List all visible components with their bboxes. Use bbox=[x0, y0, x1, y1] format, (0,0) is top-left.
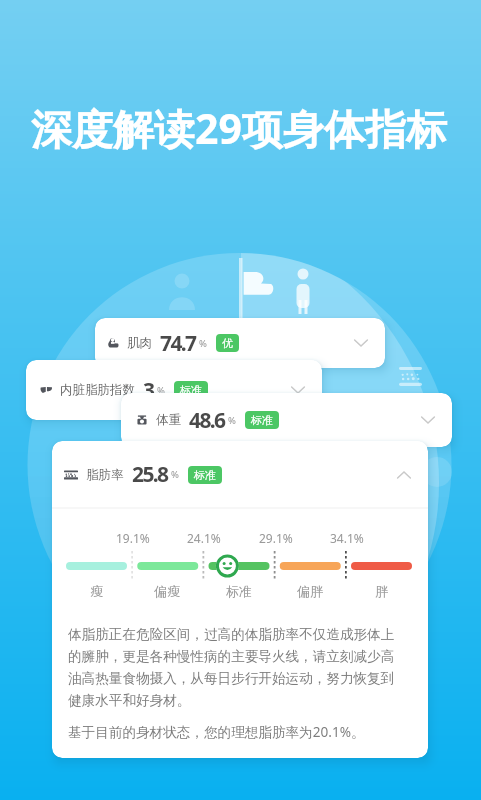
staticText: 48.6 bbox=[189, 406, 225, 435]
staticText: 标准 bbox=[180, 383, 202, 397]
staticText: 体重 bbox=[156, 412, 181, 428]
staticText: 25.8 bbox=[132, 460, 168, 489]
button[interactable]: 内脏脂肪指数 bbox=[26, 360, 322, 420]
staticText: 脂肪率 bbox=[86, 467, 124, 483]
staticText: 3 bbox=[143, 376, 154, 405]
staticText: 胖 bbox=[375, 583, 388, 599]
button[interactable]: 脂肪率 bbox=[52, 441, 428, 508]
staticText: % bbox=[171, 468, 179, 481]
staticText: 内脏脂肪指数 bbox=[60, 382, 135, 398]
button[interactable]: Collapse bbox=[395, 466, 413, 484]
button[interactable]: Expand bbox=[419, 411, 437, 429]
staticText: 偏胖 bbox=[297, 583, 323, 599]
staticText: 肌肉 bbox=[127, 335, 152, 351]
staticText: 瘦 bbox=[90, 583, 103, 599]
staticText: 34.1% bbox=[330, 530, 364, 546]
button[interactable]: 肌肉 bbox=[95, 318, 385, 368]
staticText: 74.7 bbox=[160, 329, 196, 358]
staticText: 标准 bbox=[251, 413, 273, 427]
staticText: 24.1% bbox=[187, 530, 221, 546]
staticText: 优 bbox=[222, 336, 233, 350]
button[interactable]: Expand bbox=[352, 334, 370, 352]
staticText: 偏瘦 bbox=[154, 583, 180, 599]
staticText: 标准 bbox=[194, 468, 216, 482]
button[interactable]: 体重 bbox=[121, 393, 452, 447]
staticText: 体脂肪正在危险区间，过高的体脂肪率不仅造成形体上的臃肿，更是各种慢性病的主要导火… bbox=[68, 626, 402, 709]
staticText: % bbox=[199, 337, 207, 350]
staticText: % bbox=[228, 414, 236, 427]
staticText: 深度解读29项身体指标 bbox=[31, 100, 447, 156]
staticText: 标准 bbox=[226, 583, 252, 599]
staticText: 29.1% bbox=[259, 530, 293, 546]
staticText: 基于目前的身材状态，您的理想脂肪率为20.1%。 bbox=[68, 722, 402, 741]
staticText: 19.1% bbox=[116, 530, 150, 546]
button[interactable]: Expand bbox=[289, 381, 307, 399]
staticText: % bbox=[157, 384, 165, 397]
